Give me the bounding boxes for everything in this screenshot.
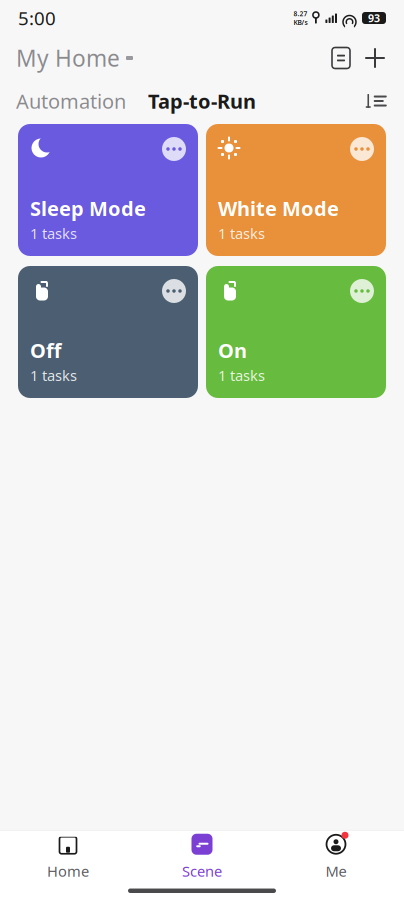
- staticText: Home: [47, 861, 89, 881]
- staticText: 93: [368, 11, 380, 25]
- staticText: Off: [30, 337, 61, 364]
- button[interactable]: Scene log: [324, 41, 358, 75]
- staticText: Scene: [182, 861, 222, 881]
- staticText: Sleep Mode: [30, 195, 146, 222]
- button[interactable]: My Home: [16, 43, 133, 73]
- staticText: 1 tasks: [30, 365, 77, 385]
- button[interactable]: More options: [162, 279, 186, 303]
- staticText: My Home: [16, 43, 120, 73]
- button[interactable]: Automation: [16, 88, 126, 114]
- staticText: 1 tasks: [30, 223, 77, 243]
- staticText: KB/s: [293, 18, 307, 27]
- button[interactable]: Off: [18, 266, 198, 398]
- button[interactable]: White Mode: [206, 124, 386, 256]
- staticText: On: [218, 337, 247, 364]
- staticText: Tap-to-Run: [148, 88, 256, 114]
- button[interactable]: Me: [269, 830, 403, 882]
- button[interactable]: Scene: [135, 830, 269, 882]
- staticText: 1 tasks: [218, 223, 265, 243]
- staticText: 8.27: [293, 9, 307, 18]
- button[interactable]: More options: [350, 137, 374, 161]
- staticText: Automation: [16, 88, 126, 114]
- staticText: White Mode: [218, 195, 339, 222]
- button[interactable]: Sort scenes: [356, 84, 396, 118]
- button[interactable]: More options: [350, 279, 374, 303]
- staticText: 1 tasks: [218, 365, 265, 385]
- button[interactable]: Tap-to-Run: [148, 88, 256, 114]
- button[interactable]: More options: [162, 137, 186, 161]
- button[interactable]: Sleep Mode: [18, 124, 198, 256]
- button[interactable]: Add scene: [358, 41, 392, 75]
- button[interactable]: On: [206, 266, 386, 398]
- staticText: Me: [325, 861, 346, 881]
- button[interactable]: Home: [1, 830, 135, 882]
- staticText: 5:00: [18, 6, 56, 30]
